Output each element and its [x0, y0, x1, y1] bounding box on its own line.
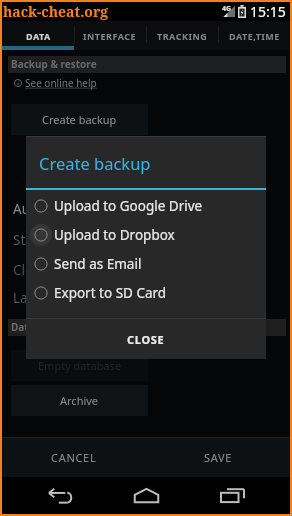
staticText: Cloud account	[13, 261, 104, 279]
staticText: TRACKING	[157, 30, 208, 42]
staticText: Archive	[60, 393, 99, 408]
button[interactable]: Send as Email	[26, 249, 266, 278]
staticText: See online help	[25, 76, 97, 90]
button[interactable]: Auto backup	[2, 195, 290, 223]
staticText: Create backup	[42, 112, 117, 127]
staticText: DATA	[26, 30, 51, 42]
staticText: Send as Email	[54, 255, 142, 273]
staticText: Export to SD Card	[54, 284, 167, 302]
staticText: Empty database	[38, 358, 122, 373]
staticText: INTERFACE	[83, 30, 137, 42]
staticText: Auto backup	[13, 200, 93, 218]
button[interactable]: Create backup	[11, 104, 148, 135]
staticText: 15:15	[250, 2, 286, 21]
button[interactable]: Archive	[11, 385, 148, 416]
button[interactable]: DATE,TIME	[218, 21, 290, 50]
staticText: hack-cheat.org	[3, 2, 109, 21]
button[interactable]: Export to SD Card	[26, 278, 266, 307]
button[interactable]: INTERFACE	[74, 21, 146, 50]
staticText: CANCEL	[51, 450, 97, 465]
button[interactable]: DATA	[2, 21, 74, 50]
staticText: 4G	[222, 4, 232, 14]
staticText: Last backup	[13, 289, 89, 307]
button[interactable]: SAVE	[146, 438, 290, 477]
staticText: Data	[11, 320, 35, 334]
staticText: Create backup	[39, 152, 151, 174]
staticText: CLOSE	[127, 332, 165, 347]
button[interactable]: CLOSE	[26, 319, 266, 359]
button[interactable]: Home	[118, 478, 174, 513]
button[interactable]: See online help	[14, 75, 97, 90]
button[interactable]: Last backup	[2, 284, 290, 312]
staticText: Backup & restore	[11, 57, 97, 71]
staticText: Upload to Google Drive	[54, 197, 203, 215]
staticText: Storage location	[13, 231, 117, 249]
button[interactable]: TRACKING	[146, 21, 218, 50]
staticText: Upload to Dropbox	[54, 226, 175, 244]
staticText: DATE,TIME	[229, 30, 280, 42]
button[interactable]: Upload to Google Drive	[26, 191, 266, 220]
button[interactable]: Back	[32, 478, 88, 513]
button[interactable]: Upload to Dropbox	[26, 220, 266, 249]
button[interactable]: Empty database	[11, 350, 148, 381]
staticText: SAVE	[204, 450, 233, 465]
button[interactable]: CANCEL	[2, 438, 146, 477]
button[interactable]: Recent apps	[204, 478, 260, 513]
button[interactable]: Cloud account	[2, 256, 290, 284]
button[interactable]: Storage location	[2, 226, 290, 254]
